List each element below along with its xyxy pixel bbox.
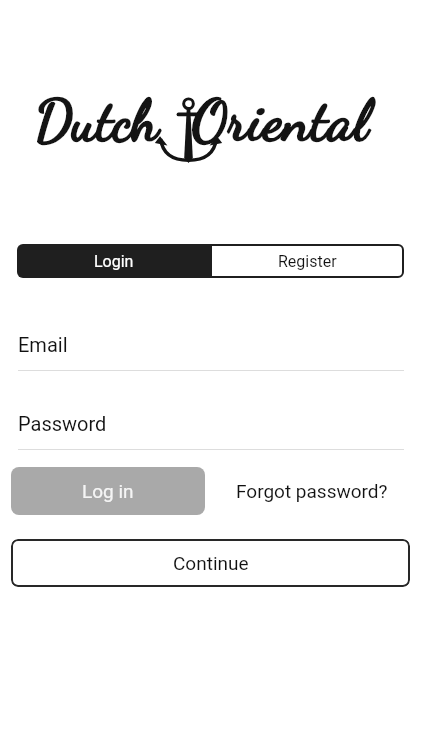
staticText: Password <box>18 412 107 435</box>
staticText: Email <box>18 333 68 356</box>
staticText: Continue <box>173 552 249 574</box>
staticText: Login <box>94 252 134 271</box>
button[interactable]: Login <box>17 244 210 278</box>
staticText: Forgot password? <box>236 480 388 502</box>
staticText: Log in <box>82 480 134 502</box>
staticText: Dutch <box>35 87 159 155</box>
button[interactable]: Forgot password? <box>205 467 419 515</box>
button[interactable]: Register <box>210 244 404 278</box>
staticText: Register <box>278 252 337 271</box>
button[interactable]: Log in <box>11 467 205 515</box>
staticText: Oriental <box>192 87 370 155</box>
button[interactable]: Continue <box>11 539 410 587</box>
staticText: Dutch <box>35 87 159 155</box>
staticText: Oriental <box>192 87 370 155</box>
